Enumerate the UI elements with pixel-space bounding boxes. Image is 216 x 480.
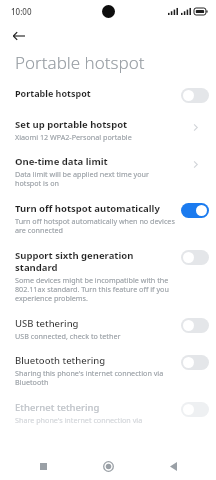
staticText: Bluetooth tethering	[15, 354, 106, 367]
staticText: Xiaomi 12 WPA2-Personal portable	[15, 132, 132, 142]
button[interactable]: Set up portable hotspot	[0, 118, 216, 142]
staticText: Portable hotspot	[15, 87, 91, 99]
staticText: USB connected, check to tether	[15, 331, 121, 341]
button[interactable]: Back	[151, 452, 195, 480]
button[interactable]: Portable hotspot	[0, 87, 216, 103]
button[interactable]: Support sixth generation standard	[0, 249, 216, 304]
staticText: One-time data limit	[15, 155, 108, 168]
staticText: Sharing this phone's internet connection…	[15, 368, 175, 388]
staticText: USB tethering	[15, 317, 79, 330]
button[interactable]: Bluetooth tethering	[0, 354, 216, 388]
button[interactable]: One-time data limit	[0, 155, 216, 189]
button[interactable]: USB tethering	[0, 317, 216, 341]
staticText: Support sixth generation standard	[15, 249, 175, 274]
staticText: Portable hotspot	[15, 51, 145, 74]
button[interactable]: Switch on	[181, 203, 209, 218]
staticText: Set up portable hotspot	[15, 118, 128, 131]
button[interactable]: Recent apps	[21, 452, 65, 480]
button[interactable]: Switch off	[181, 355, 209, 370]
button[interactable]: Open	[181, 156, 209, 172]
staticText: Turn off hotspot automatically	[15, 202, 160, 215]
staticText: 10:00	[11, 6, 32, 17]
button[interactable]: Ethernet tethering	[0, 401, 216, 425]
staticText: Some devices might be incompatible with …	[15, 275, 175, 304]
button[interactable]: Switch off	[181, 88, 209, 103]
button[interactable]: Open	[181, 119, 209, 135]
staticText: Turn off hotspot automatically when no d…	[15, 216, 175, 236]
button[interactable]: Back	[7, 24, 31, 48]
button[interactable]: Switch off	[181, 250, 209, 265]
button[interactable]: Switch off	[181, 402, 209, 417]
staticText: Data limit will be applied next time you…	[15, 169, 175, 189]
staticText: Share phone's internet connection via	[15, 415, 143, 425]
button[interactable]: Turn off hotspot automatically	[0, 202, 216, 236]
staticText: Ethernet tethering	[15, 401, 100, 414]
button[interactable]: Home	[86, 452, 130, 480]
button[interactable]: Switch off	[181, 318, 209, 333]
